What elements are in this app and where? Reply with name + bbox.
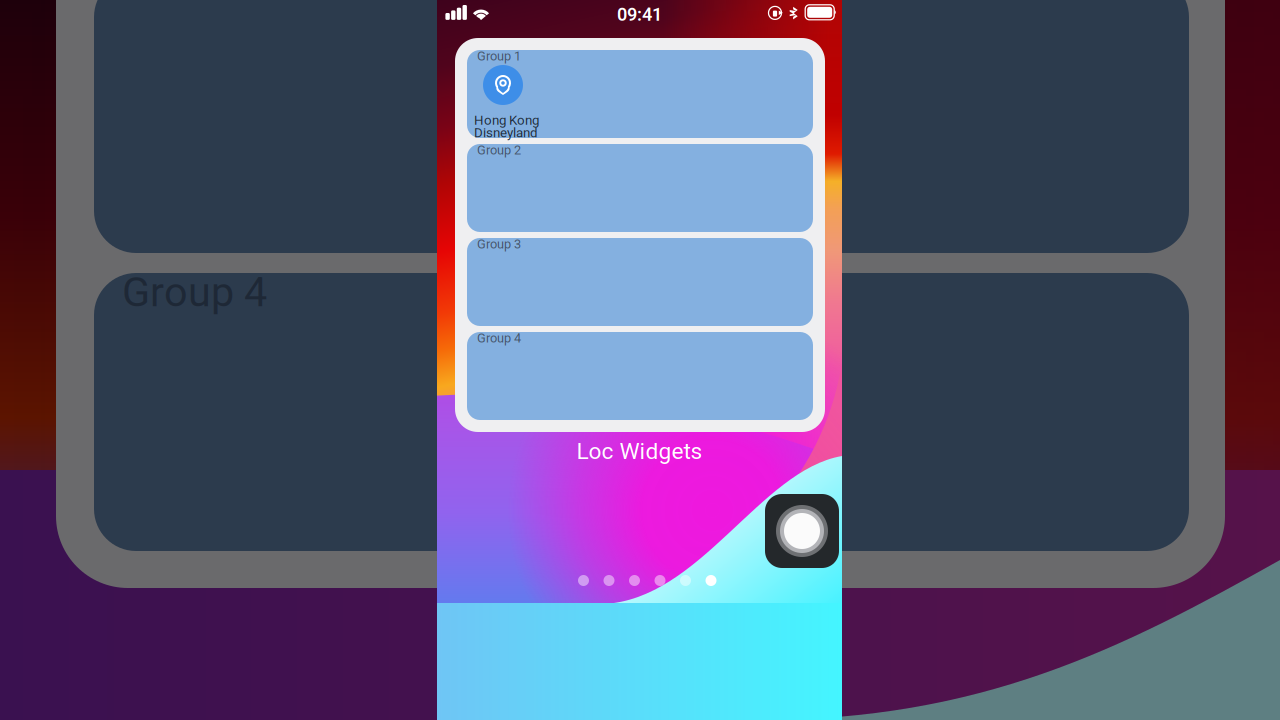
staticText: Group 1: [477, 48, 521, 63]
button[interactable]: App: [765, 494, 839, 568]
button[interactable]: Group 4: [467, 332, 813, 420]
staticText: Hong Kong: [474, 112, 539, 128]
staticText: Group 2: [477, 142, 521, 157]
button[interactable]: Group 1: [467, 50, 813, 138]
staticText: Disneyland: [474, 125, 538, 140]
button[interactable]: Group 2: [467, 144, 813, 232]
staticText: 09:41: [617, 4, 662, 25]
staticText: Group 3: [477, 236, 521, 251]
button[interactable]: Group 3: [467, 238, 813, 326]
staticText: Loc Widgets: [576, 438, 702, 465]
staticText: Group 4: [122, 268, 267, 316]
staticText: Group 4: [477, 330, 521, 345]
